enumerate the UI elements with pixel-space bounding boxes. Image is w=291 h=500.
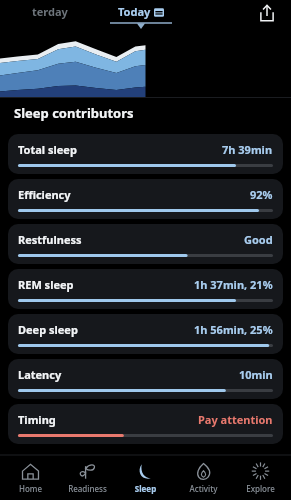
button[interactable]: terday	[28, 0, 72, 23]
staticText: Timing	[18, 412, 56, 427]
staticText: 92%	[250, 187, 273, 202]
staticText: Activity	[176, 483, 231, 494]
button[interactable]: Share	[255, 1, 279, 25]
button[interactable]: Home	[3, 462, 58, 494]
staticText: terday	[32, 4, 68, 19]
staticText: Home	[3, 483, 58, 494]
staticText: Total sleep	[18, 142, 77, 157]
button[interactable]: Activity	[176, 462, 231, 494]
staticText: Pay attention	[198, 412, 273, 427]
staticText: 7h 39min	[222, 142, 273, 157]
staticText: Deep sleep	[18, 322, 78, 337]
button[interactable]: Sleep	[118, 462, 173, 494]
staticText: 10min	[239, 367, 273, 382]
staticText: Latency	[18, 367, 62, 382]
staticText: Restfulness	[18, 232, 82, 247]
staticText: Sleep contributors	[14, 104, 134, 122]
button[interactable]: Deep sleep	[8, 314, 283, 354]
staticText: 1h 56min, 25%	[194, 322, 273, 337]
button[interactable]: Total sleep	[8, 134, 283, 174]
button[interactable]: Latency	[8, 359, 283, 399]
button[interactable]: Readiness	[60, 462, 115, 494]
button[interactable]: Efficiency	[8, 179, 283, 219]
staticText: 1h 37min, 21%	[194, 277, 273, 292]
staticText: Efficiency	[18, 187, 71, 202]
staticText: Good	[244, 232, 273, 247]
staticText: REM sleep	[18, 277, 74, 292]
button[interactable]: Explore	[233, 462, 288, 494]
staticText: Readiness	[60, 483, 115, 494]
button[interactable]: Timing	[8, 404, 283, 444]
staticText: Sleep	[118, 483, 173, 494]
staticText: Explore	[233, 483, 288, 494]
button[interactable]: REM sleep	[8, 269, 283, 309]
staticText: Today	[118, 4, 151, 19]
button[interactable]: Restfulness	[8, 224, 283, 264]
button[interactable]: Today	[110, 0, 172, 29]
